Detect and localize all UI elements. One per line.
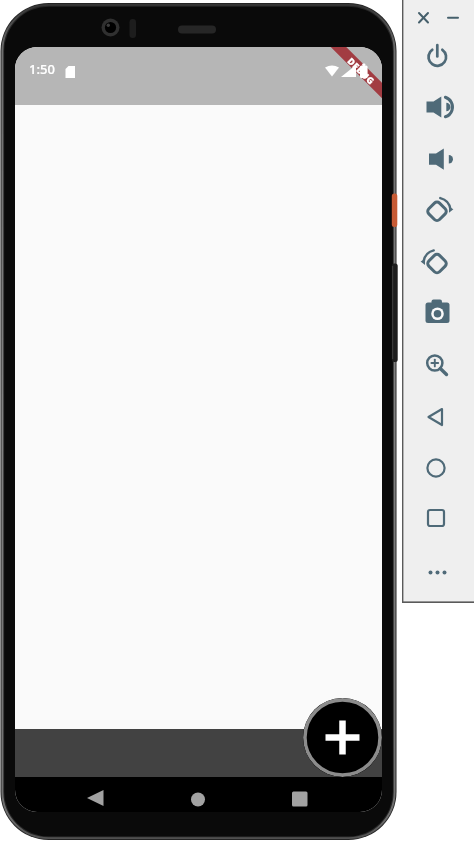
button[interactable] xyxy=(420,196,454,226)
button[interactable] xyxy=(419,453,453,483)
button[interactable] xyxy=(419,503,453,533)
button[interactable] xyxy=(436,2,470,32)
staticText: DEBUG xyxy=(346,55,378,86)
button[interactable] xyxy=(264,782,320,812)
button[interactable] xyxy=(419,402,453,432)
button[interactable] xyxy=(420,557,454,587)
staticText: 1:50 xyxy=(29,60,55,78)
button[interactable] xyxy=(420,144,454,174)
button[interactable] xyxy=(420,248,454,278)
button[interactable] xyxy=(406,2,440,32)
button[interactable] xyxy=(420,92,454,122)
button[interactable] xyxy=(303,698,382,777)
button[interactable] xyxy=(420,42,454,72)
button[interactable] xyxy=(420,297,454,327)
button[interactable] xyxy=(75,782,131,812)
button[interactable] xyxy=(420,350,454,380)
button[interactable] xyxy=(170,782,226,812)
